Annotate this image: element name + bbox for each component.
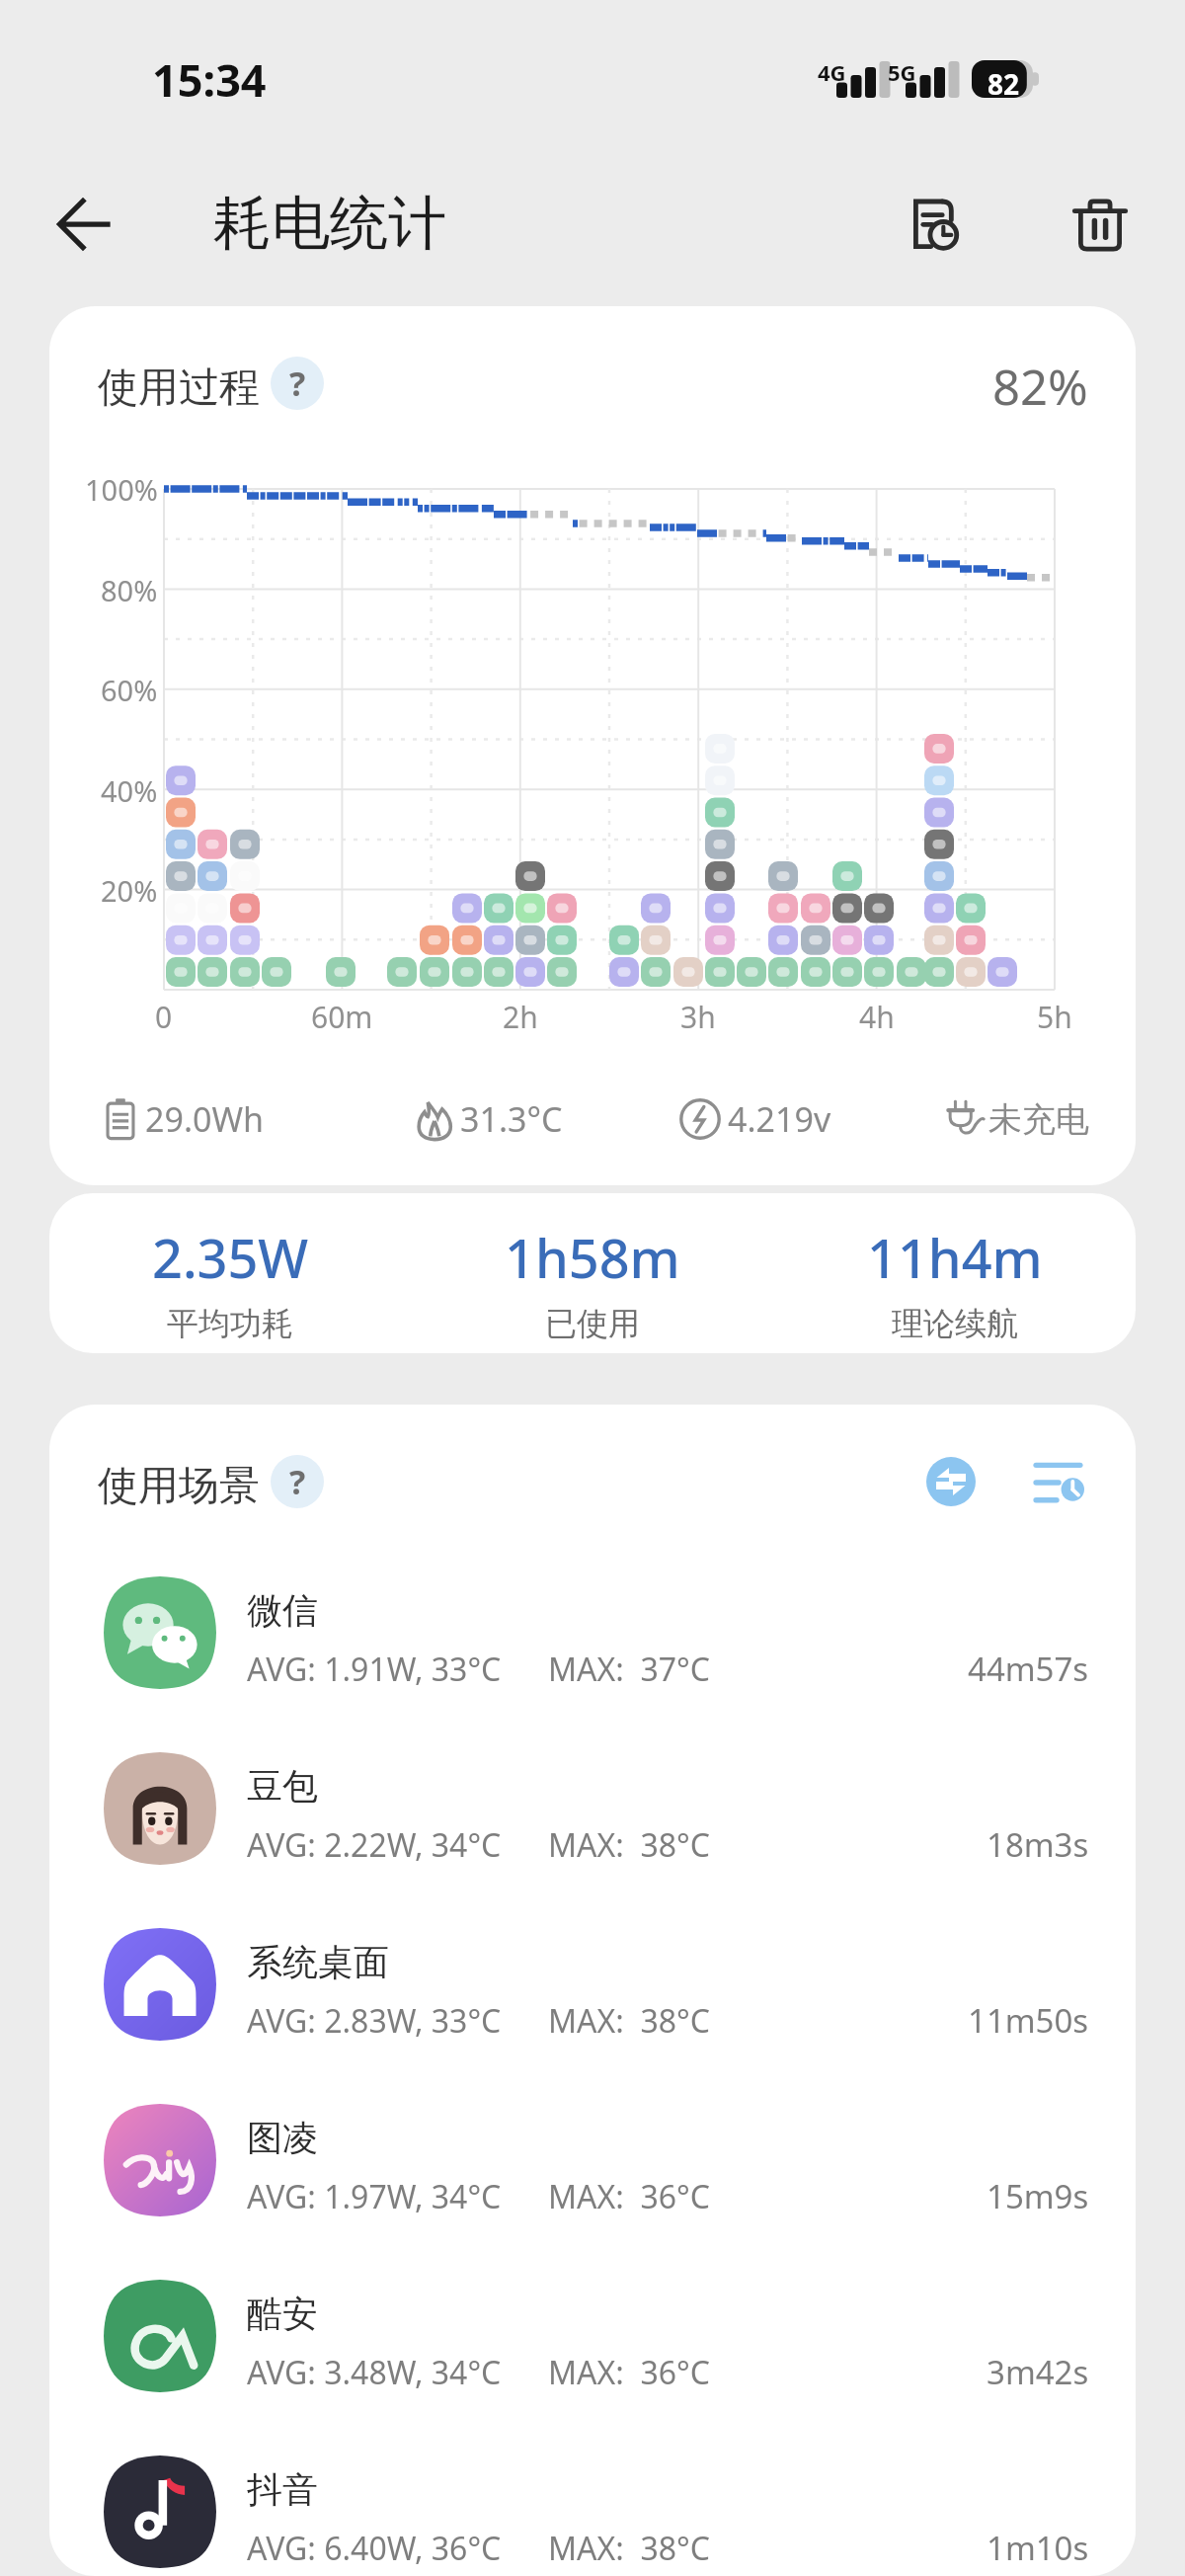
staticText: 未充电	[988, 1098, 1089, 1141]
staticText: MAX: 38°C	[548, 2527, 710, 2570]
staticText: AVG: 1.97W, 34°C	[247, 2175, 502, 2218]
staticText: 2h	[503, 997, 538, 1037]
button[interactable]: Help	[271, 1455, 324, 1508]
button[interactable]: History	[889, 178, 984, 273]
staticText: 15m9s	[987, 2174, 1089, 2218]
button[interactable]: 微信	[49, 1545, 1136, 1721]
staticText: AVG: 3.48W, 34°C	[247, 2351, 502, 2394]
staticText: 3h	[680, 997, 716, 1037]
staticText: 已使用	[545, 1304, 640, 1343]
staticText: 0	[155, 997, 173, 1037]
button[interactable]: 1h58m	[411, 1221, 773, 1343]
staticText: 理论续航	[892, 1304, 1018, 1343]
staticText: 80%	[101, 571, 158, 609]
staticText: 1h58m	[505, 1221, 680, 1294]
button[interactable]: Back	[36, 177, 130, 272]
staticText: MAX: 38°C	[548, 1999, 710, 2043]
button[interactable]: Help	[271, 357, 324, 410]
staticText: 1m10s	[987, 2526, 1089, 2570]
staticText: 豆包	[247, 1764, 318, 1809]
button[interactable]: 抖音	[49, 2424, 1136, 2576]
staticText: MAX: 36°C	[548, 2175, 710, 2218]
staticText: 60m	[311, 997, 373, 1037]
staticText: 82	[987, 65, 1020, 103]
staticText: 平均功耗	[167, 1304, 293, 1343]
staticText: 4G	[818, 57, 846, 87]
button[interactable]: Delete	[1053, 178, 1147, 273]
staticText: AVG: 1.91W, 33°C	[247, 1648, 502, 1691]
staticText: 抖音	[247, 2467, 318, 2512]
staticText: MAX: 36°C	[548, 2351, 710, 2394]
staticText: 耗电统计	[213, 187, 446, 260]
staticText: ?	[289, 1459, 306, 1504]
staticText: AVG: 6.40W, 36°C	[247, 2527, 502, 2570]
staticText: 82%	[992, 354, 1088, 420]
staticText: AVG: 2.83W, 33°C	[247, 1999, 502, 2043]
button[interactable]: 酷安	[49, 2248, 1136, 2424]
staticText: 使用过程	[98, 362, 260, 414]
staticText: 29.0Wh	[145, 1096, 265, 1142]
staticText: 5h	[1037, 997, 1072, 1037]
button[interactable]: Sort	[908, 1438, 994, 1525]
staticText: 15:34	[152, 49, 267, 110]
staticText: 图凌	[247, 2116, 318, 2160]
staticText: 20%	[101, 871, 158, 910]
staticText: MAX: 38°C	[548, 1823, 710, 1867]
button[interactable]: 2.35W	[49, 1221, 411, 1343]
staticText: MAX: 37°C	[548, 1648, 710, 1691]
staticText: 60%	[101, 671, 158, 709]
staticText: 2.35W	[152, 1221, 309, 1294]
button[interactable]: 图凌	[49, 2072, 1136, 2248]
staticText: 44m57s	[968, 1647, 1089, 1691]
staticText: 40%	[101, 771, 158, 810]
button[interactable]: Sort by time	[1015, 1438, 1102, 1525]
staticText: 5G	[888, 57, 916, 87]
button[interactable]: 系统桌面	[49, 1896, 1136, 2072]
staticText: 使用场景	[98, 1461, 260, 1512]
button[interactable]: 豆包	[49, 1721, 1136, 1896]
staticText: 31.3°C	[460, 1096, 563, 1142]
staticText: AVG: 2.22W, 34°C	[247, 1823, 502, 1867]
staticText: 系统桌面	[247, 1940, 389, 1984]
staticText: 3m42s	[987, 2350, 1089, 2394]
staticText: 11m50s	[968, 1998, 1089, 2043]
staticText: 11h4m	[867, 1221, 1043, 1294]
staticText: ?	[289, 361, 306, 406]
staticText: 4h	[859, 997, 895, 1037]
button[interactable]: 11h4m	[773, 1221, 1136, 1343]
staticText: 18m3s	[987, 1822, 1089, 1867]
staticText: 4.219v	[728, 1096, 831, 1142]
staticText: 酷安	[247, 2292, 318, 2336]
staticText: 100%	[85, 470, 158, 509]
staticText: 微信	[247, 1588, 318, 1633]
